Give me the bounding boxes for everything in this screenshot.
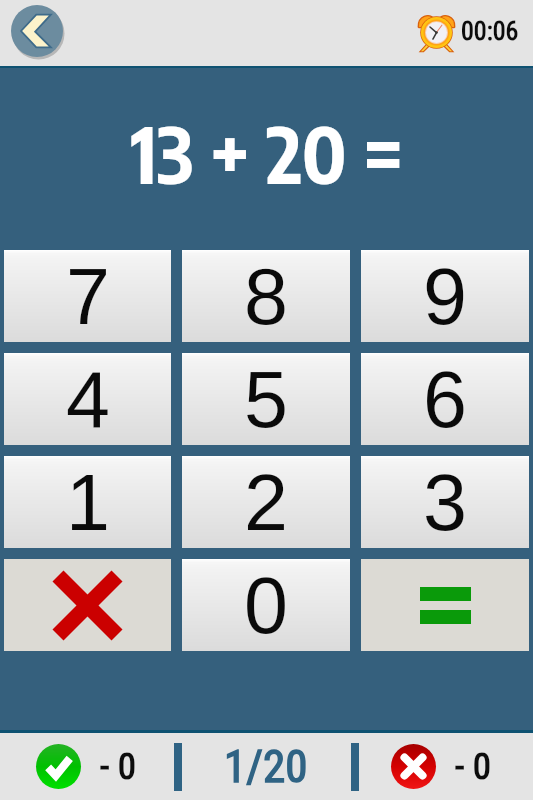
staticText: - 0 <box>100 745 136 788</box>
button[interactable]: 3 <box>361 456 529 548</box>
staticText: 9 <box>423 252 467 340</box>
staticText: 2 <box>244 458 288 546</box>
staticText: 1 <box>66 458 110 546</box>
staticText: 7 <box>66 252 110 340</box>
staticText: 5 <box>244 355 288 443</box>
button[interactable]: 0 <box>182 559 350 651</box>
staticText: 6 <box>423 355 467 443</box>
button[interactable]: 8 <box>182 250 350 342</box>
staticText: 1/20 <box>224 740 308 793</box>
button[interactable]: 2 <box>182 456 350 548</box>
button[interactable]: Clear <box>4 559 171 651</box>
staticText: 0 <box>244 561 288 649</box>
staticText: 8 <box>244 252 288 340</box>
staticText: 3 <box>423 458 467 546</box>
staticText: 13 + 20 = <box>131 105 403 201</box>
button[interactable]: Back <box>10 4 64 58</box>
button[interactable]: 4 <box>4 353 171 445</box>
staticText: 00:06 <box>461 16 519 46</box>
button[interactable]: 5 <box>182 353 350 445</box>
button[interactable]: 7 <box>4 250 171 342</box>
staticText: 4 <box>66 355 110 443</box>
staticText: - 0 <box>455 745 491 788</box>
button[interactable]: Equals <box>361 559 529 651</box>
button[interactable]: 1 <box>4 456 171 548</box>
button[interactable]: 9 <box>361 250 529 342</box>
button[interactable]: 6 <box>361 353 529 445</box>
